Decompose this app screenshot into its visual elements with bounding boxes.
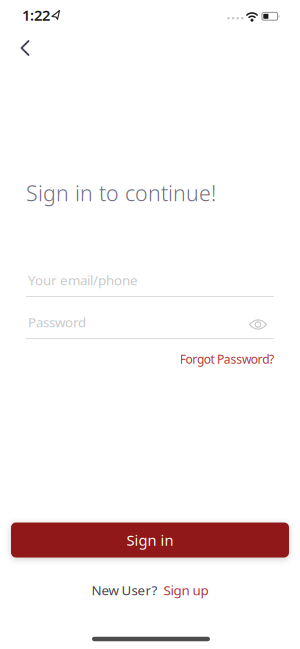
button[interactable]: Show password [246,314,270,334]
staticText: Sign in [126,530,173,550]
button[interactable]: Sign up [163,581,208,599]
staticText: 1:22 [22,5,50,25]
staticText: Forgot Password? [180,351,274,367]
staticText: Your email/phone [28,271,138,289]
button[interactable]: Sign in [11,522,289,557]
button[interactable]: Back [9,39,39,69]
staticText: Sign up [163,581,208,599]
staticText: Sign in to continue! [26,179,216,207]
staticText: New User? [91,581,157,599]
button[interactable]: Forgot Password? [180,351,274,367]
staticText: Password [28,313,86,331]
